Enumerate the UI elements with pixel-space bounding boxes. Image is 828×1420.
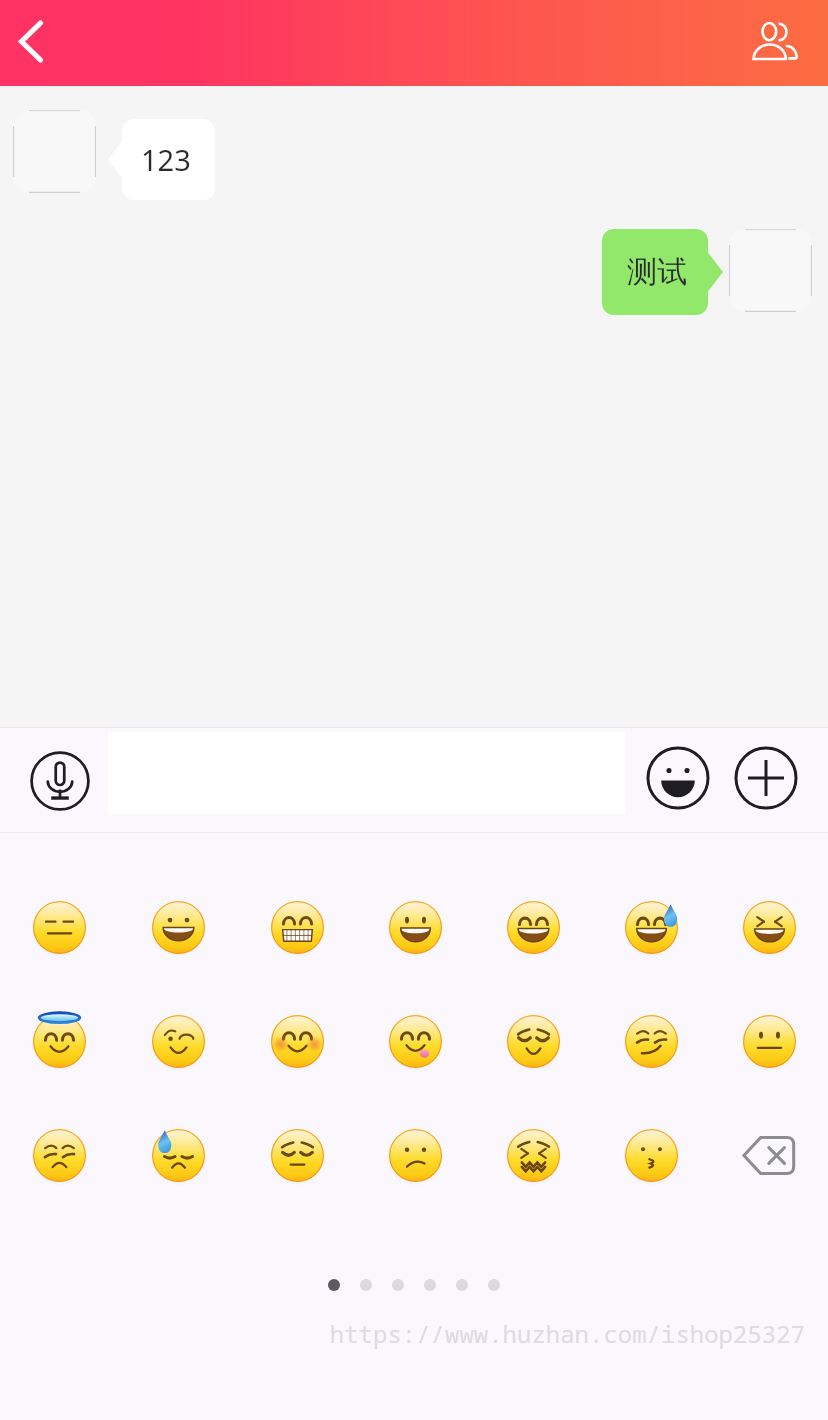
button[interactable]: Emoji 12 <box>592 984 710 1098</box>
staticText: https://www.huzhan.com/ishop25327 <box>329 1317 805 1350</box>
button[interactable]: Emoji 10 <box>356 984 474 1098</box>
button[interactable]: Emoji 8 <box>119 984 238 1098</box>
button[interactable]: Avatar <box>729 229 812 312</box>
button[interactable]: Page 3 <box>392 1279 404 1291</box>
button[interactable]: Emoji 9 <box>238 984 356 1098</box>
button[interactable]: Emoji 2 <box>238 870 356 984</box>
button[interactable]: Emoji 5 <box>592 870 710 984</box>
button[interactable]: Message 测试 <box>602 229 723 315</box>
button[interactable]: Page 6 <box>488 1279 500 1291</box>
button[interactable]: Emoji 4 <box>474 870 592 984</box>
staticText: 123 <box>141 140 191 179</box>
button[interactable]: Voice message <box>30 751 90 811</box>
button[interactable]: Page 2 <box>360 1279 372 1291</box>
button[interactable]: Avatar <box>13 110 96 193</box>
button[interactable]: More <box>734 746 798 810</box>
button[interactable]: Emoji 16 <box>238 1098 356 1212</box>
button[interactable]: Page 1 <box>328 1279 340 1291</box>
button[interactable]: Emoji 3 <box>356 870 474 984</box>
button[interactable]: Page 4 <box>424 1279 436 1291</box>
button[interactable]: Page 5 <box>456 1279 468 1291</box>
button[interactable]: Emoji 7 <box>0 984 119 1098</box>
button[interactable]: Message 123 <box>108 119 215 200</box>
button[interactable]: Emoji <box>646 746 710 810</box>
button[interactable]: Emoji 15 <box>119 1098 238 1212</box>
button[interactable]: Group members <box>741 4 809 66</box>
button[interactable]: Emoji 11 <box>474 984 592 1098</box>
button[interactable]: Emoji 0 <box>0 870 119 984</box>
button[interactable]: Emoji 6 <box>710 870 828 984</box>
button[interactable]: Back <box>1 13 61 73</box>
button[interactable]: Delete <box>710 1098 828 1212</box>
button[interactable]: Emoji 13 <box>710 984 828 1098</box>
button[interactable]: Emoji 18 <box>474 1098 592 1212</box>
button[interactable]: Emoji 19 <box>592 1098 710 1212</box>
button[interactable]: Emoji 17 <box>356 1098 474 1212</box>
button[interactable]: Emoji 1 <box>119 870 238 984</box>
staticText: 测试 <box>627 253 687 291</box>
button[interactable]: Emoji 14 <box>0 1098 119 1212</box>
